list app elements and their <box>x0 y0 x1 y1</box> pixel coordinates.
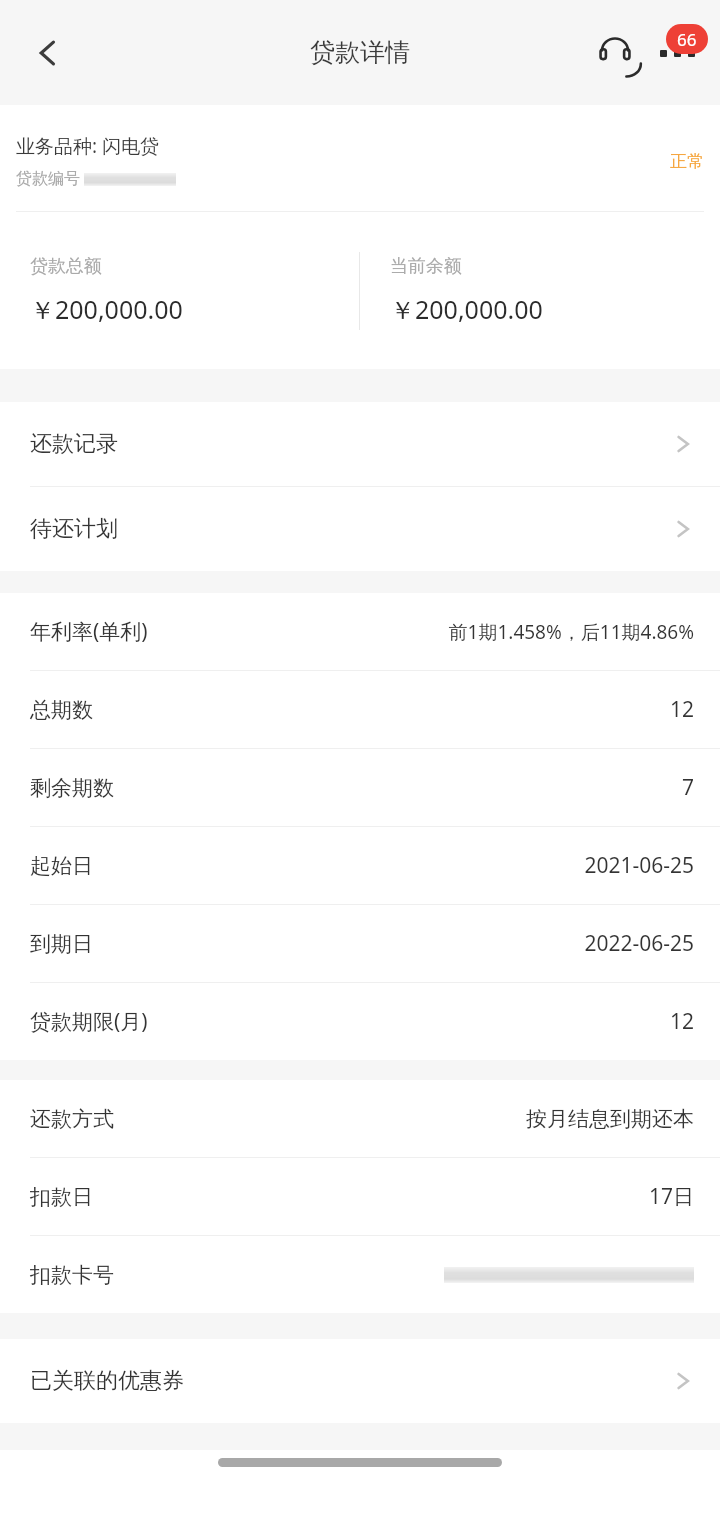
staticText: 12 <box>669 1007 694 1036</box>
staticText: 66 <box>677 28 697 51</box>
staticText: 剩余期数 <box>30 775 114 801</box>
staticText: 还款记录 <box>30 430 118 458</box>
staticText: 扣款卡号 <box>30 1262 114 1288</box>
staticText: 贷款期限(月) <box>30 1007 148 1036</box>
button[interactable]: 已关联的优惠券 <box>0 1339 720 1423</box>
staticText: ￥200,000.00 <box>30 292 183 326</box>
staticText: 到期日 <box>30 931 93 957</box>
staticText: 当前余额 <box>390 255 462 278</box>
staticText: 贷款详情 <box>310 37 410 68</box>
staticText: 待还计划 <box>30 515 118 543</box>
staticText: 前1期1.458%，后11期4.86% <box>448 619 694 645</box>
staticText: 业务品种: 闪电贷 <box>16 133 160 159</box>
staticText: ￥200,000.00 <box>390 292 543 326</box>
staticText: 7 <box>681 773 694 802</box>
staticText: 按月结息到期还本 <box>526 1106 694 1132</box>
button[interactable]: Back <box>14 19 82 87</box>
staticText: 17日 <box>648 1182 694 1211</box>
button[interactable]: 待还计划 <box>0 487 720 571</box>
staticText: 2021-06-25 <box>584 851 694 880</box>
staticText: 扣款日 <box>30 1184 93 1210</box>
button[interactable]: More options <box>646 22 708 84</box>
button[interactable]: Customer service <box>584 22 646 84</box>
staticText: 已关联的优惠券 <box>30 1367 184 1395</box>
staticText: 起始日 <box>30 853 93 879</box>
staticText: 总期数 <box>30 697 93 723</box>
staticText: 贷款编号 <box>16 169 80 189</box>
staticText: 年利率(单利) <box>30 617 148 646</box>
staticText: 还款方式 <box>30 1106 114 1132</box>
staticText: 2022-06-25 <box>584 929 694 958</box>
staticText: 贷款总额 <box>30 255 102 278</box>
button[interactable]: 还款记录 <box>0 402 720 486</box>
staticText: 12 <box>669 695 694 724</box>
staticText: 正常 <box>670 151 704 172</box>
